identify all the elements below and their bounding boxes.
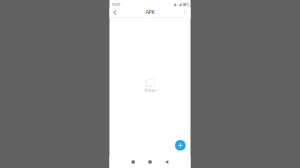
staticText: APK bbox=[145, 8, 154, 16]
button[interactable]: Back bbox=[161, 156, 173, 168]
button[interactable]: Add bbox=[175, 140, 186, 151]
button[interactable]: Home bbox=[144, 156, 156, 168]
staticText: 10:01 bbox=[111, 2, 120, 7]
button[interactable]: Back bbox=[109, 7, 120, 18]
button[interactable]: Recent apps bbox=[127, 156, 139, 168]
button[interactable]: More options bbox=[179, 7, 190, 18]
staticText: Dosya bbox=[144, 87, 155, 93]
